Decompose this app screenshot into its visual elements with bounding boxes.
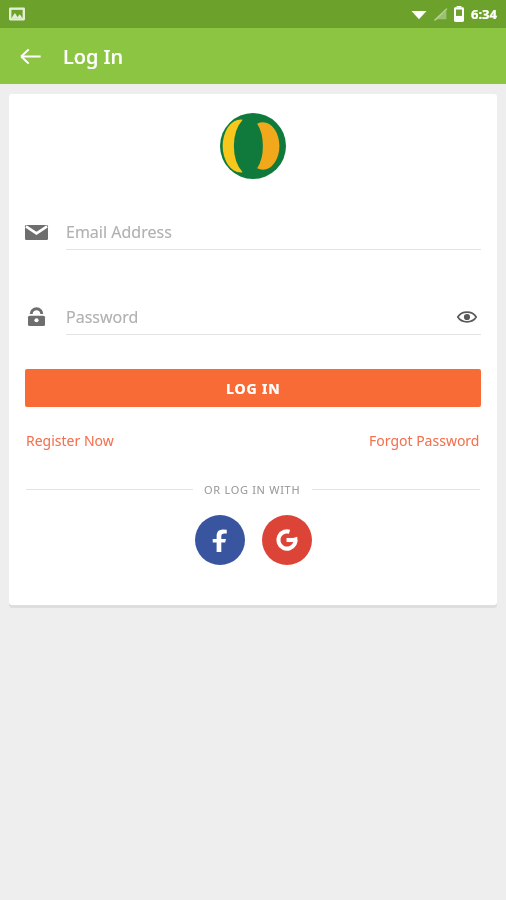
button[interactable]: Register Now — [26, 431, 114, 450]
staticText: 6:34 — [471, 5, 497, 23]
button[interactable]: Log in with Facebook — [195, 515, 245, 565]
staticText: Log In — [63, 43, 124, 70]
button[interactable]: LOG IN — [25, 369, 481, 407]
button[interactable]: Log in with Google — [262, 515, 312, 565]
button[interactable]: Forgot Password — [369, 431, 480, 450]
staticText: Forgot Password — [369, 431, 480, 450]
staticText: Email Address — [66, 221, 172, 243]
staticText: LOG IN — [226, 379, 281, 398]
staticText: Password — [66, 306, 139, 328]
button[interactable]: Back — [8, 34, 52, 78]
button[interactable]: Show password — [453, 303, 481, 331]
staticText: Register Now — [26, 431, 114, 450]
staticText: OR LOG IN WITH — [204, 482, 301, 497]
